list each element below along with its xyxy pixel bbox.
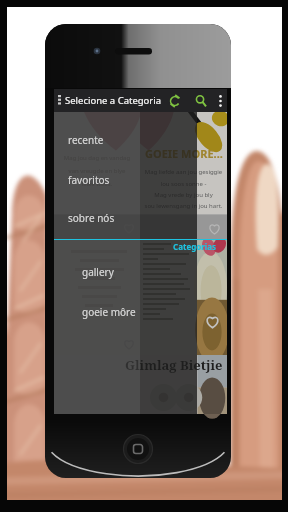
staticText: goeie môre (82, 305, 136, 319)
staticText: Categorias (173, 241, 217, 252)
staticText: Mag liefde aan jou gesiggie lou soos son… (142, 168, 225, 209)
button[interactable]: Search (188, 89, 214, 112)
button[interactable]: Glimlag Bietjie (140, 355, 227, 414)
button[interactable]: goeie môre (54, 295, 140, 329)
button[interactable]: favoritos (54, 163, 140, 197)
staticText: sobre nós (68, 211, 115, 225)
staticText: gallery (82, 265, 114, 279)
staticText: Mag jou dag en vandag van vreugde en bly… (60, 154, 134, 188)
button[interactable]: recente (54, 123, 140, 157)
button[interactable]: Open navigation drawer (54, 89, 65, 112)
button[interactable]: Refresh (162, 89, 188, 112)
staticText: Glimlag Bietjie (125, 356, 223, 374)
staticText: favoritos (68, 173, 110, 187)
staticText: recente (68, 133, 104, 147)
button[interactable]: sobre nós (54, 201, 140, 235)
button[interactable]: GOEIE MORE... (140, 112, 227, 240)
staticText: GOEIE MORE... (145, 146, 223, 161)
button[interactable]: gallery (54, 255, 140, 289)
button[interactable]: More options (214, 89, 227, 112)
staticText: Selecione a Categoria (65, 94, 162, 107)
button[interactable] (54, 240, 140, 355)
button[interactable] (140, 240, 227, 355)
button[interactable]: Mag jou dag en vandag van vreugde en bly… (54, 112, 140, 240)
